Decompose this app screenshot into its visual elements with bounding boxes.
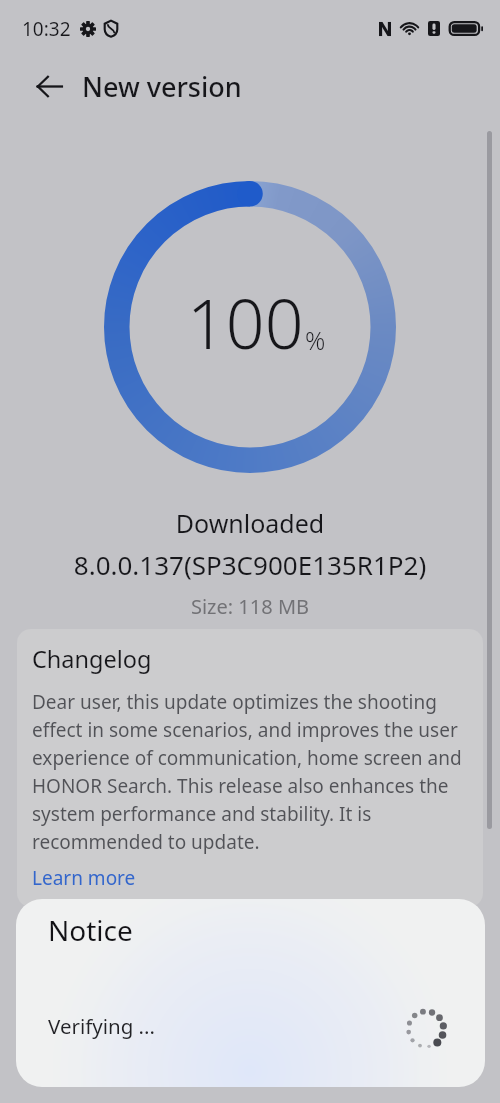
staticText: 100	[187, 276, 304, 369]
staticText: %	[305, 323, 326, 357]
staticText: Changelog	[32, 643, 152, 675]
staticText: Dear user, this update optimizes the sho…	[32, 689, 471, 855]
staticText: 10:32	[22, 16, 71, 42]
staticText: Downloaded	[0, 506, 500, 540]
button[interactable]: Learn more	[32, 865, 136, 891]
staticText: New version	[82, 68, 242, 105]
staticText: Verifying ...	[48, 1012, 156, 1040]
staticText: Learn more	[32, 865, 136, 891]
button[interactable]: Back	[23, 60, 75, 112]
staticText: Notice	[48, 911, 133, 949]
staticText: 8.0.0.137(SP3C900E135R1P2)	[0, 547, 500, 582]
staticText: Size: 118 MB	[0, 593, 500, 620]
